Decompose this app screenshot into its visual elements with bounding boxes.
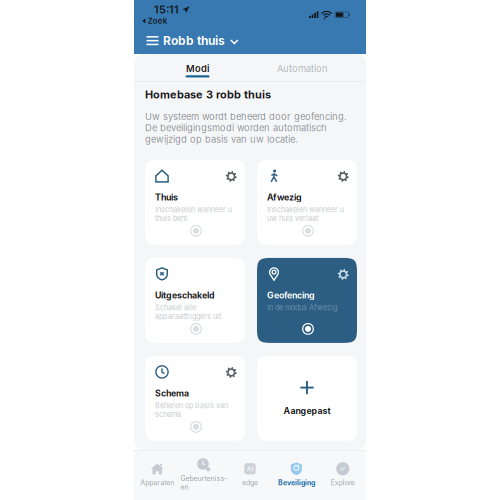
staticText: Beheren op basis van schema: [155, 401, 228, 419]
button[interactable]: AI: [227, 462, 273, 487]
staticText: Gebeurtenissen: [181, 474, 227, 491]
staticText: Inschakelen wanneer u thuis bent: [155, 205, 232, 223]
button[interactable]: Modi: [145, 54, 250, 81]
staticText: Homebase 3 robb thuis: [145, 88, 271, 101]
button[interactable]: Beveiliging: [273, 462, 320, 487]
button[interactable]: Uitgeschakeld: [145, 258, 245, 343]
staticText: Schakel alle apparaattriggers uit: [155, 303, 221, 321]
staticText: Robb thuis: [163, 33, 225, 48]
button[interactable]: Thuis: [145, 160, 245, 245]
button[interactable]: Gebeurtenissen: [180, 458, 227, 491]
staticText: Aangepast: [283, 406, 330, 416]
staticText: Afwezig: [267, 192, 302, 202]
staticText: Schema: [155, 388, 189, 398]
staticText: Beveiliging: [278, 479, 315, 487]
staticText: Uitgeschakeld: [155, 290, 215, 300]
staticText: AI: [246, 465, 253, 473]
button[interactable]: Geofencing: [257, 258, 357, 343]
button[interactable]: Robb thuis: [163, 31, 239, 50]
staticText: In de modus Afwezig: [267, 303, 337, 312]
staticText: 15:11: [154, 3, 179, 16]
staticText: Inschakelen wanneer u uw huis verlaat: [267, 205, 344, 223]
staticText: Zoek: [148, 16, 167, 26]
staticText: Automation: [277, 63, 328, 74]
button[interactable]: Menu: [142, 32, 163, 49]
staticText: Uw systeem wordt beheerd door geofencing…: [145, 111, 347, 145]
staticText: Modi: [186, 63, 209, 74]
staticText: Geofencing: [267, 290, 315, 300]
button[interactable]: Apparaten: [134, 462, 180, 487]
button[interactable]: Automation: [250, 54, 355, 81]
button[interactable]: Aangepast: [257, 356, 357, 441]
staticText: Apparaten: [140, 479, 174, 487]
button[interactable]: Explore: [320, 462, 366, 487]
button[interactable]: Schema: [145, 356, 245, 441]
staticText: Explore: [331, 479, 355, 487]
staticText: Thuis: [155, 192, 178, 202]
button[interactable]: Afwezig: [257, 160, 357, 245]
staticText: edge: [242, 479, 258, 487]
